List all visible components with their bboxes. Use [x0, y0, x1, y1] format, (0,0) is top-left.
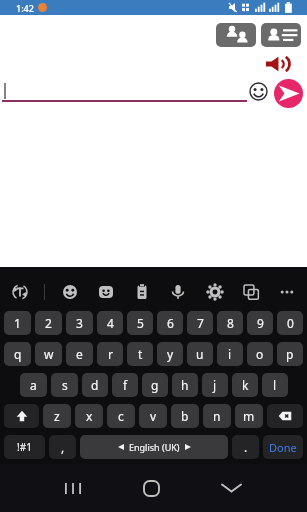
button[interactable] [239, 280, 263, 304]
button[interactable] [261, 23, 301, 47]
button[interactable] [133, 470, 169, 506]
staticText: s [62, 377, 68, 393]
button[interactable]: o [247, 342, 273, 366]
button[interactable]: a [20, 373, 47, 397]
button[interactable]: y [157, 342, 183, 366]
button[interactable]: c [107, 404, 135, 428]
button[interactable]: b [171, 404, 199, 428]
button[interactable]: 4 [97, 311, 123, 335]
button[interactable] [130, 280, 154, 304]
staticText: o [256, 346, 264, 362]
staticText: c [118, 408, 124, 424]
button[interactable]: w [35, 342, 62, 366]
staticText: 3 [76, 315, 83, 331]
button[interactable] [216, 23, 256, 47]
button[interactable]: 1 [4, 311, 31, 335]
button[interactable] [266, 55, 290, 73]
staticText: a [30, 377, 37, 393]
staticText: n [213, 408, 221, 424]
button[interactable]: !#1 [4, 435, 45, 459]
staticText: k [242, 377, 249, 393]
staticText: d [91, 377, 99, 393]
button[interactable]: t [127, 342, 153, 366]
button[interactable]: z [43, 404, 71, 428]
staticText: b [181, 408, 189, 424]
button[interactable]: q [4, 342, 31, 366]
staticText: English (UK) [129, 441, 180, 453]
button[interactable]: , [49, 435, 76, 459]
button[interactable]: g [142, 373, 168, 397]
button[interactable]: i [217, 342, 243, 366]
staticText: y [167, 346, 174, 362]
staticText: l [273, 377, 277, 393]
button[interactable]: n [203, 404, 231, 428]
button[interactable] [267, 404, 303, 428]
button[interactable]: 7 [187, 311, 213, 335]
staticText: z [54, 408, 60, 424]
button[interactable]: v [139, 404, 167, 428]
staticText: q [14, 346, 22, 362]
button[interactable] [94, 280, 118, 304]
button[interactable]: 8 [217, 311, 243, 335]
button[interactable]: e [66, 342, 93, 366]
staticText: , [61, 439, 65, 455]
button[interactable] [274, 79, 303, 108]
staticText: h [181, 377, 189, 393]
button[interactable]: 9 [247, 311, 273, 335]
staticText: m [243, 408, 255, 424]
staticText: 4 [107, 315, 114, 331]
staticText: 5 [137, 315, 144, 331]
button[interactable]: 5 [127, 311, 153, 335]
staticText: !#1 [17, 440, 32, 454]
button[interactable] [58, 280, 82, 304]
staticText: g [151, 377, 159, 393]
button[interactable]: l [262, 373, 288, 397]
button[interactable]: x [75, 404, 103, 428]
button[interactable]: j [202, 373, 228, 397]
staticText: v [150, 408, 157, 424]
button[interactable] [8, 280, 32, 304]
button[interactable] [166, 280, 190, 304]
button[interactable] [213, 470, 249, 506]
staticText: u [196, 346, 204, 362]
button[interactable]: k [232, 373, 258, 397]
staticText: w [44, 346, 54, 362]
staticText: j [213, 377, 217, 393]
staticText: x [86, 408, 93, 424]
button[interactable]: 3 [66, 311, 93, 335]
staticText: 1 [14, 315, 21, 331]
button[interactable]: m [235, 404, 263, 428]
staticText: f [123, 377, 128, 393]
button[interactable] [4, 404, 39, 428]
button[interactable]: d [82, 373, 108, 397]
staticText: p [286, 346, 294, 362]
button[interactable]: 2 [35, 311, 62, 335]
button[interactable]: r [97, 342, 123, 366]
button[interactable]: 0 [277, 311, 303, 335]
button[interactable] [55, 470, 91, 506]
button[interactable]: u [187, 342, 213, 366]
button[interactable] [249, 82, 268, 101]
button[interactable] [275, 280, 299, 304]
staticText: Done [269, 440, 297, 455]
button[interactable] [203, 280, 227, 304]
button[interactable]: Done [263, 435, 303, 459]
staticText: t [138, 346, 143, 362]
staticText: r [108, 346, 113, 362]
button[interactable]: . [232, 435, 259, 459]
staticText: e [76, 346, 83, 362]
button[interactable]: f [112, 373, 138, 397]
button[interactable]: p [277, 342, 303, 366]
staticText: 7 [197, 315, 204, 331]
staticText: 2 [45, 315, 52, 331]
staticText: i [228, 346, 232, 362]
staticText: . [244, 439, 248, 455]
button[interactable]: h [172, 373, 198, 397]
staticText: 8 [227, 315, 234, 331]
staticText: 1:42 [16, 2, 34, 14]
staticText: 6 [167, 315, 174, 331]
button[interactable]: 6 [157, 311, 183, 335]
button[interactable]: s [51, 373, 78, 397]
button[interactable]: English (UK) [80, 435, 228, 459]
